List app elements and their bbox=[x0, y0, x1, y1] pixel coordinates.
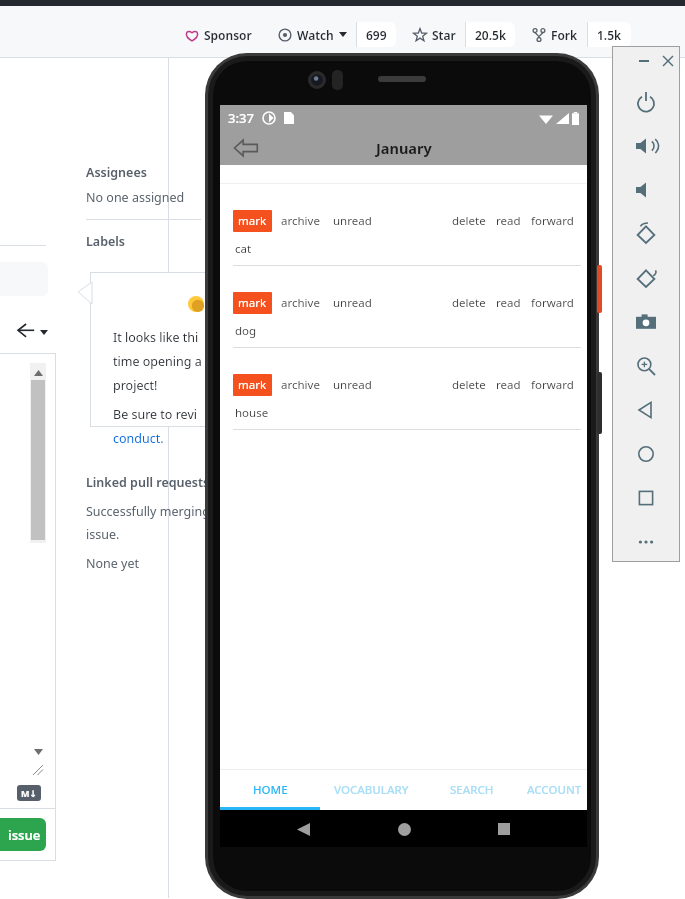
staticText: Sponsor bbox=[204, 27, 252, 43]
button[interactable]: Close bbox=[658, 51, 678, 71]
button[interactable]: forward bbox=[531, 213, 574, 229]
button[interactable]: read bbox=[496, 377, 521, 393]
button[interactable]: mark bbox=[233, 292, 272, 314]
button[interactable]: Home bbox=[628, 436, 664, 472]
button[interactable]: Home bbox=[387, 812, 421, 846]
button[interactable]: archive bbox=[281, 213, 320, 229]
staticText: mark bbox=[238, 377, 267, 393]
button[interactable]: mark bbox=[233, 374, 272, 396]
staticText: time opening a bbox=[113, 353, 202, 370]
staticText: 1.5k bbox=[597, 27, 622, 43]
button[interactable]: archive bbox=[281, 377, 320, 393]
staticText: unread bbox=[333, 295, 372, 311]
button[interactable]: Rotate left bbox=[628, 216, 664, 252]
button[interactable]: delete bbox=[452, 213, 486, 229]
button[interactable]: forward bbox=[531, 377, 574, 393]
staticText: Linked pull requests bbox=[86, 474, 210, 491]
button[interactable]: Star bbox=[404, 22, 515, 47]
staticText: VOCABULARY bbox=[334, 782, 409, 798]
button[interactable]: Screenshot bbox=[628, 304, 664, 340]
button[interactable]: read bbox=[496, 295, 521, 311]
button[interactable]: Zoom bbox=[628, 348, 664, 384]
button[interactable]: Sponsor bbox=[176, 22, 261, 47]
staticText: Be sure to revi bbox=[113, 406, 197, 423]
staticText: 3:37 bbox=[228, 109, 254, 127]
staticText: No one assigned bbox=[86, 189, 185, 206]
button[interactable]: ACCOUNT bbox=[521, 770, 587, 810]
staticText: None yet bbox=[86, 555, 140, 572]
staticText: issue bbox=[8, 826, 41, 844]
staticText: forward bbox=[531, 377, 574, 393]
staticText: HOME bbox=[253, 782, 288, 798]
button[interactable]: mark bbox=[220, 184, 587, 266]
staticText: Labels bbox=[86, 233, 125, 250]
staticText: SEARCH bbox=[450, 782, 494, 798]
button[interactable]: unread bbox=[333, 295, 372, 311]
button[interactable]: HOME bbox=[220, 770, 320, 810]
staticText: Star bbox=[432, 27, 456, 43]
staticText: read bbox=[496, 377, 521, 393]
staticText: archive bbox=[281, 377, 320, 393]
staticText: read bbox=[496, 295, 521, 311]
staticText: unread bbox=[333, 213, 372, 229]
staticText: Fork bbox=[551, 27, 578, 43]
button[interactable]: mark bbox=[220, 266, 587, 348]
button[interactable]: Fork bbox=[523, 22, 631, 47]
button[interactable]: Power bbox=[628, 84, 664, 120]
staticText: mark bbox=[238, 213, 267, 229]
button[interactable]: read bbox=[496, 213, 521, 229]
staticText: 20.5k bbox=[475, 27, 506, 43]
staticText: archive bbox=[281, 213, 320, 229]
staticText: January bbox=[376, 138, 432, 158]
staticText: M↓ bbox=[21, 787, 38, 799]
button[interactable]: unread bbox=[333, 377, 372, 393]
staticText: Assignees bbox=[86, 164, 147, 181]
staticText: Successfully merging bbox=[86, 503, 210, 520]
button[interactable]: mark bbox=[220, 348, 587, 430]
staticText: forward bbox=[531, 295, 574, 311]
staticText: archive bbox=[281, 295, 320, 311]
staticText: delete bbox=[452, 377, 486, 393]
staticText: unread bbox=[333, 377, 372, 393]
button[interactable]: More bbox=[628, 524, 664, 560]
button[interactable]: mark bbox=[233, 210, 272, 232]
staticText: It looks like thi bbox=[113, 329, 199, 346]
button[interactable]: Watch bbox=[269, 22, 396, 47]
button[interactable]: Back bbox=[286, 812, 320, 846]
staticText: project! bbox=[113, 377, 158, 394]
staticText: issue. bbox=[86, 526, 120, 543]
button[interactable]: unread bbox=[333, 213, 372, 229]
staticText: conduct. bbox=[113, 430, 164, 447]
button[interactable]: Back bbox=[230, 132, 262, 164]
button[interactable]: SEARCH bbox=[423, 770, 521, 810]
button[interactable]: Overview bbox=[628, 480, 664, 516]
button[interactable]: delete bbox=[452, 377, 486, 393]
staticText: ACCOUNT bbox=[527, 782, 582, 798]
staticText: dog bbox=[235, 323, 257, 339]
staticText: read bbox=[496, 213, 521, 229]
button[interactable]: Back bbox=[628, 392, 664, 428]
staticText: delete bbox=[452, 213, 486, 229]
button[interactable]: forward bbox=[531, 295, 574, 311]
button[interactable]: issue bbox=[0, 818, 46, 851]
button[interactable]: Rotate right bbox=[628, 260, 664, 296]
staticText: forward bbox=[531, 213, 574, 229]
button[interactable]: Volume up bbox=[628, 128, 664, 164]
staticText: mark bbox=[238, 295, 267, 311]
staticText: cat bbox=[235, 241, 252, 257]
button[interactable]: Recents bbox=[487, 812, 521, 846]
button[interactable]: Minimize bbox=[634, 51, 654, 71]
staticText: delete bbox=[452, 295, 486, 311]
button[interactable]: delete bbox=[452, 295, 486, 311]
button[interactable]: archive bbox=[281, 295, 320, 311]
staticText: Watch bbox=[297, 27, 334, 43]
staticText: 699 bbox=[366, 27, 387, 43]
button[interactable]: Volume down bbox=[628, 172, 664, 208]
button[interactable]: VOCABULARY bbox=[320, 770, 423, 810]
staticText: house bbox=[235, 405, 269, 421]
